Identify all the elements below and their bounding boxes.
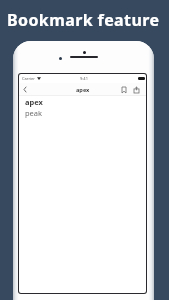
- button[interactable]: Bookmark: [119, 85, 128, 94]
- staticText: Bookmark feature: [7, 9, 160, 31]
- button[interactable]: Share: [132, 85, 141, 94]
- button[interactable]: Back: [20, 85, 29, 94]
- staticText: Carrier: [22, 76, 36, 81]
- staticText: peak: [25, 108, 43, 118]
- staticText: apex: [25, 97, 43, 107]
- staticText: apex: [76, 86, 90, 94]
- staticText: 9:41: [80, 76, 88, 81]
